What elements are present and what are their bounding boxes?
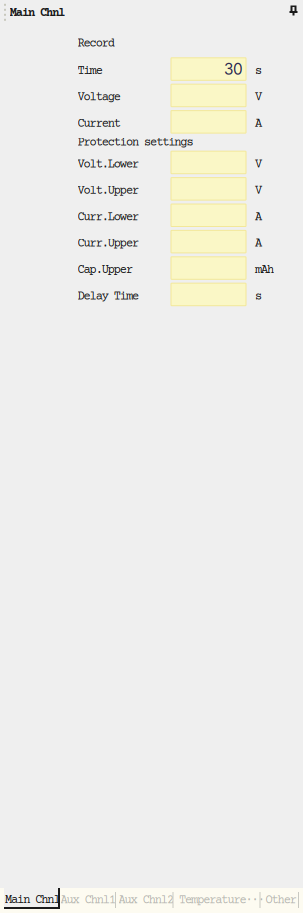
staticText: A bbox=[255, 117, 262, 131]
staticText: Volt.Lower bbox=[77, 158, 139, 171]
staticText: Other bbox=[265, 894, 297, 907]
staticText: Volt.Upper bbox=[77, 184, 139, 198]
staticText: Delay Time bbox=[77, 290, 139, 303]
staticText: Aux Chnl2 bbox=[118, 894, 174, 907]
staticText: Aux Chnl1 bbox=[60, 894, 116, 907]
staticText: Curr.Upper bbox=[77, 237, 139, 251]
staticText: mAh bbox=[255, 264, 274, 277]
button[interactable]: entry field bbox=[171, 230, 246, 253]
button[interactable]: entry field bbox=[171, 151, 246, 174]
staticText: Main Chnl bbox=[10, 7, 65, 20]
button[interactable]: entry field bbox=[171, 84, 246, 107]
button[interactable]: Other bbox=[0, 888, 31, 913]
staticText: V bbox=[255, 184, 262, 198]
staticText: V bbox=[255, 158, 262, 171]
button[interactable]: entry field bbox=[171, 111, 246, 133]
button[interactable]: entry field bbox=[171, 283, 246, 306]
button[interactable]: Aux Chnl2 bbox=[0, 888, 55, 913]
staticText: Temperature··· bbox=[179, 894, 265, 907]
staticText: Main Chnl bbox=[5, 893, 60, 907]
button[interactable]: entry field bbox=[171, 257, 246, 279]
staticText: s bbox=[255, 65, 262, 78]
staticText: 30 bbox=[224, 60, 243, 78]
button[interactable]: entry field bbox=[171, 178, 246, 200]
staticText: Current bbox=[77, 117, 121, 131]
staticText: V bbox=[255, 91, 262, 104]
staticText: Voltage bbox=[77, 91, 121, 104]
staticText: Time bbox=[77, 65, 103, 78]
staticText: A bbox=[255, 237, 262, 251]
button[interactable]: Pin window bbox=[288, 5, 299, 16]
staticText: A bbox=[255, 211, 262, 224]
staticText: Record bbox=[77, 37, 115, 51]
staticText: Curr.Lower bbox=[77, 211, 139, 224]
button[interactable]: entry field bbox=[171, 204, 246, 226]
staticText: Protection settings bbox=[77, 136, 193, 150]
staticText: Cap.Upper bbox=[77, 264, 133, 277]
button[interactable]: Main Chnl bbox=[0, 888, 60, 913]
button[interactable]: entry field bbox=[171, 58, 246, 80]
staticText: s bbox=[255, 290, 262, 303]
button[interactable]: Aux Chnl1 bbox=[0, 888, 55, 913]
button[interactable]: Temperature··· bbox=[0, 888, 86, 913]
